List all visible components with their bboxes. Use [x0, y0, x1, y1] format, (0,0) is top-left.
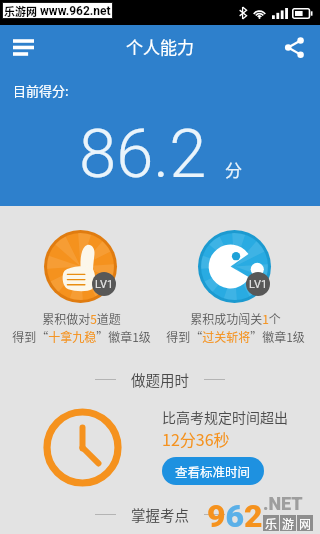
staticText: 目前得分: — [13, 81, 69, 100]
staticText: 比高考规定时间超出 — [162, 407, 288, 427]
staticText: 分 — [225, 157, 242, 182]
staticText: 962 — [207, 497, 263, 534]
staticText: 86.2 — [79, 115, 207, 194]
staticText: 做题用时 — [131, 369, 189, 390]
button[interactable]: Menu — [5, 29, 41, 65]
staticText: 乐 — [265, 515, 278, 531]
button[interactable]: 查看标准时间 — [162, 457, 264, 485]
staticText: 游 — [282, 515, 295, 531]
staticText: LV1 — [95, 278, 114, 291]
staticText: 12分36秒 — [162, 427, 230, 450]
button[interactable]: Share — [276, 29, 312, 65]
staticText: 查看标准时间 — [175, 462, 251, 480]
staticText: www.962.net — [40, 4, 111, 18]
staticText: .NET — [263, 493, 303, 514]
staticText: 得到“过关斩将”徽章1级 — [166, 328, 305, 345]
staticText: 网 — [299, 515, 312, 531]
staticText: LV1 — [249, 278, 268, 291]
staticText: 得到“十拿九稳”徽章1级 — [12, 328, 151, 345]
button[interactable]: LV1 — [161, 224, 309, 345]
staticText: 累积做对5道题 — [42, 310, 121, 327]
staticText: 个人能力 — [126, 34, 194, 59]
staticText: 乐游网 — [4, 3, 37, 19]
button[interactable]: LV1 — [7, 224, 155, 345]
staticText: 掌握考点 — [131, 504, 189, 525]
staticText: 累积成功闯关1个 — [190, 310, 281, 327]
